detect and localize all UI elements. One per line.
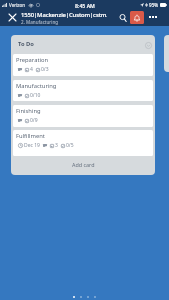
staticText: Fulfillment [16, 132, 45, 140]
button[interactable]: List actions [143, 40, 153, 50]
button[interactable]: Close [5, 10, 20, 25]
button[interactable]: Notifications [130, 11, 144, 24]
staticText: 0/10 [30, 92, 41, 99]
staticText: Add card [72, 161, 95, 168]
button[interactable]: Finishing [13, 105, 153, 127]
staticText: 1550|Mackenzie|Custom|cstm… [21, 11, 107, 19]
staticText: 0/9 [30, 117, 38, 124]
staticText: Finishing [16, 107, 41, 115]
button[interactable]: More options [146, 10, 160, 24]
staticText: Verizon [9, 2, 26, 8]
button[interactable]: Add card [11, 159, 155, 175]
staticText: 2. Manufacturing [21, 19, 59, 25]
staticText: Preparation [16, 56, 49, 64]
button[interactable]: Preparation [13, 54, 153, 76]
button[interactable]: Manufacturing [13, 80, 153, 101]
button[interactable]: Search [115, 10, 130, 25]
staticText: 3 [55, 142, 58, 149]
staticText: Manufacturing [16, 82, 57, 90]
staticText: 4 [30, 66, 33, 73]
staticText: Dec 19 [24, 142, 40, 149]
button[interactable]: Fulfillment [13, 130, 153, 156]
staticText: To Do [18, 40, 34, 48]
staticText: 95% [149, 2, 159, 8]
staticText: 0/3 [41, 66, 49, 73]
staticText: 8:45 AM [75, 2, 95, 9]
staticText: 0/5 [66, 142, 74, 149]
